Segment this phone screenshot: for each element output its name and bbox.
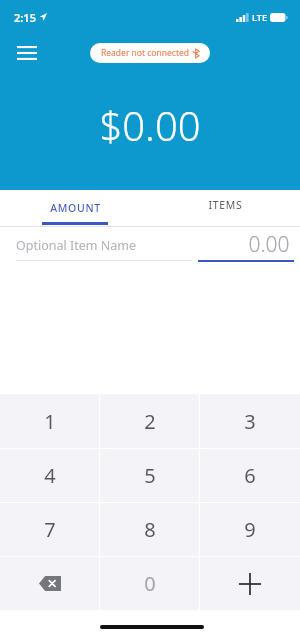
button[interactable]: 5	[100, 449, 200, 502]
staticText: AMOUNT	[50, 201, 101, 215]
button[interactable]: Menu	[10, 38, 44, 68]
staticText: 2	[144, 408, 156, 435]
button[interactable]: 1	[0, 394, 100, 448]
button[interactable]: 0	[100, 557, 200, 610]
button[interactable]: ITEMS	[150, 190, 300, 227]
button[interactable]: 3	[200, 394, 300, 448]
staticText: 0	[144, 570, 156, 597]
staticText: Reader not connected	[101, 47, 189, 59]
button[interactable]: Add	[200, 557, 300, 610]
staticText: 2:15	[14, 10, 36, 25]
button[interactable]: AMOUNT	[0, 190, 150, 227]
staticText: 7	[44, 516, 56, 543]
staticText: 6	[244, 462, 256, 489]
staticText: 3	[244, 408, 256, 435]
button[interactable]: Reader not connected	[90, 43, 210, 63]
button[interactable]: 2	[100, 394, 200, 448]
staticText: 8	[144, 516, 156, 543]
staticText: 4	[44, 462, 56, 489]
staticText: 0.00	[248, 230, 290, 259]
staticText: ITEMS	[208, 198, 243, 212]
button[interactable]: 8	[100, 503, 200, 556]
button[interactable]: 4	[0, 449, 100, 502]
button[interactable]: 9	[200, 503, 300, 556]
staticText: 1	[44, 408, 56, 435]
button[interactable]: 7	[0, 503, 100, 556]
button[interactable]: Delete	[0, 557, 100, 610]
staticText: LTE	[252, 11, 267, 23]
staticText: 9	[244, 516, 256, 543]
staticText: 5	[144, 462, 156, 489]
staticText: Optional Item Name	[16, 237, 136, 254]
button[interactable]: 6	[200, 449, 300, 502]
button[interactable]: Optional Item Name	[16, 237, 136, 254]
staticText: $0.00	[99, 98, 201, 152]
button[interactable]: 0.00	[248, 230, 290, 259]
